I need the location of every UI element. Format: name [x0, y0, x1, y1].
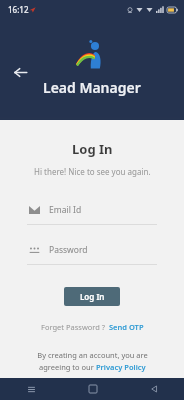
button[interactable]: Privacy Policy	[96, 362, 146, 372]
button[interactable]: Password	[27, 241, 157, 265]
button[interactable]: Back	[123, 378, 184, 400]
staticText: 16:12	[8, 4, 29, 15]
staticText: Forget Password ?	[41, 322, 106, 332]
button[interactable]: Back	[6, 58, 34, 86]
staticText: Lead Manager	[43, 78, 141, 97]
staticText: agreeing to our	[39, 362, 96, 372]
button[interactable]: Log In	[64, 287, 120, 306]
staticText: Email Id	[49, 204, 82, 216]
staticText: Password	[49, 244, 88, 256]
staticText: Privacy Policy	[96, 362, 146, 372]
staticText: Hi there! Nice to see you again.	[34, 166, 151, 177]
staticText: Log In	[80, 291, 105, 302]
button[interactable]: Recent apps	[0, 378, 62, 400]
staticText: By creating an account, you are	[37, 350, 148, 360]
button[interactable]: Send OTP	[109, 322, 144, 332]
button[interactable]: Home	[62, 378, 123, 400]
button[interactable]: Email Id	[27, 201, 157, 225]
staticText: Log In	[72, 140, 113, 158]
staticText: Send OTP	[109, 322, 144, 332]
